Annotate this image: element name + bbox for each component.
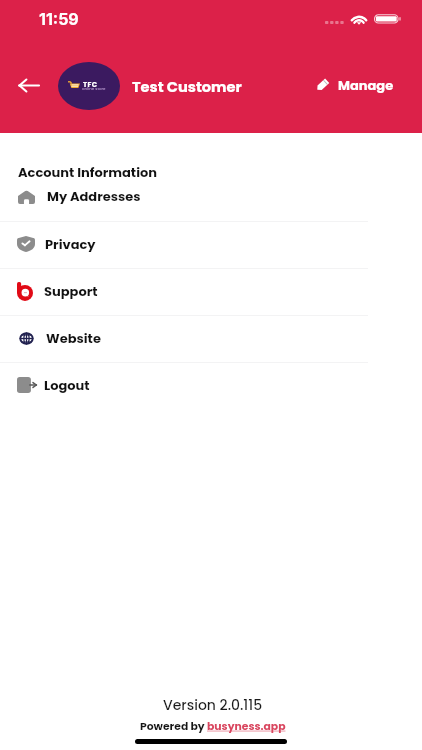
staticText: Test Customer	[132, 77, 242, 97]
staticText: My Addresses	[47, 187, 141, 205]
staticText: Support	[44, 282, 98, 300]
staticText: Manage	[338, 76, 394, 94]
button[interactable]: Website	[0, 316, 422, 363]
staticText: Version 2.0.115	[163, 695, 263, 715]
button[interactable]: Profile picture	[58, 62, 120, 110]
button[interactable]: Back	[9, 70, 47, 100]
button[interactable]: Privacy	[0, 222, 422, 269]
staticText: online store	[82, 86, 106, 92]
button[interactable]: Support	[0, 269, 422, 316]
staticText: Powered by	[140, 719, 207, 734]
button[interactable]: Manage	[316, 72, 394, 98]
button[interactable]: My Addresses	[0, 174, 422, 221]
staticText: Privacy	[45, 235, 96, 253]
staticText: 11:59	[39, 9, 79, 28]
button[interactable]: busyness.app	[207, 719, 286, 734]
staticText: TFC	[83, 80, 98, 90]
staticText: Logout	[44, 376, 90, 394]
button[interactable]: Logout	[0, 363, 422, 410]
staticText: Website	[46, 329, 101, 347]
staticText: Account Information	[18, 163, 158, 181]
